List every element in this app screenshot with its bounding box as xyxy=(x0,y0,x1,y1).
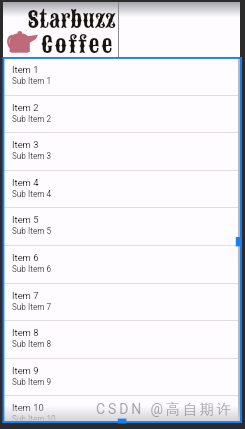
staticText: Sub Item 6 xyxy=(12,264,52,274)
staticText: Item 3 xyxy=(12,139,39,150)
staticText: Item 10 xyxy=(12,402,44,413)
button[interactable]: Item 7 xyxy=(3,284,240,321)
staticText: CSDN @高自期许 xyxy=(96,401,234,419)
staticText: Coffee xyxy=(41,29,114,60)
staticText: Sub Item 5 xyxy=(12,226,52,236)
button[interactable]: Item 5 xyxy=(3,208,240,246)
staticText: Sub Item 10 xyxy=(12,414,56,423)
staticText: Item 6 xyxy=(12,252,39,263)
button[interactable]: Item 8 xyxy=(3,321,240,359)
button[interactable]: Item 6 xyxy=(3,246,240,284)
staticText: Item 8 xyxy=(12,327,39,338)
staticText: Item 4 xyxy=(12,177,39,188)
staticText: Sub Item 9 xyxy=(12,377,52,387)
button[interactable]: Item 10 xyxy=(3,396,240,423)
staticText: Sub Item 4 xyxy=(12,189,52,199)
button[interactable]: Item 4 xyxy=(3,171,240,208)
staticText: Sub Item 7 xyxy=(12,302,52,312)
staticText: Sub Item 3 xyxy=(12,151,52,161)
other: Starbuzz Coffee logo xyxy=(3,2,119,57)
button[interactable]: Item 1 xyxy=(3,58,240,96)
button[interactable]: Item 2 xyxy=(3,96,240,133)
staticText: Item 5 xyxy=(12,214,39,225)
staticText: Item 7 xyxy=(12,290,39,301)
staticText: Sub Item 1 xyxy=(12,76,52,86)
staticText: Sub Item 2 xyxy=(12,114,52,124)
button[interactable]: Item 9 xyxy=(3,359,240,396)
staticText: Sub Item 8 xyxy=(12,339,52,349)
button[interactable]: Item 3 xyxy=(3,133,240,171)
staticText: Starbuzz xyxy=(28,5,116,34)
staticText: Item 9 xyxy=(12,365,39,376)
staticText: Item 1 xyxy=(12,64,39,75)
staticText: Item 2 xyxy=(12,102,39,113)
